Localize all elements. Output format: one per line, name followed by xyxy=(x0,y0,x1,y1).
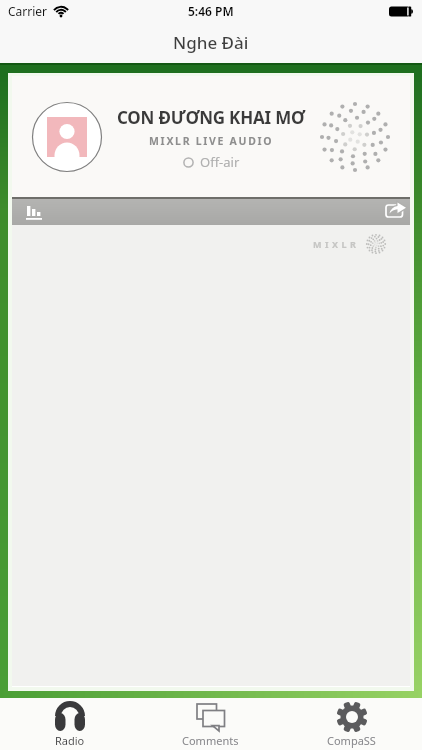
button[interactable] xyxy=(366,197,410,225)
staticText: CON ĐƯƠNG KHAI MƠ xyxy=(117,106,305,129)
button[interactable]: Radio xyxy=(0,698,140,748)
staticText: CompaSS xyxy=(327,733,376,748)
staticText: Carrier xyxy=(8,3,48,19)
staticText: Radio xyxy=(55,733,85,748)
staticText: Off-air xyxy=(200,153,240,171)
staticText: MIXLR LIVE AUDIO xyxy=(149,134,274,148)
button[interactable]: Comments xyxy=(140,698,281,748)
staticText: Comments xyxy=(182,733,239,748)
staticText: Nghe Đài xyxy=(173,31,249,54)
staticText: MIXLR xyxy=(313,238,360,250)
button[interactable]: CompaSS xyxy=(281,698,422,748)
staticText: 5:46 PM xyxy=(188,3,234,19)
button[interactable] xyxy=(12,197,56,225)
